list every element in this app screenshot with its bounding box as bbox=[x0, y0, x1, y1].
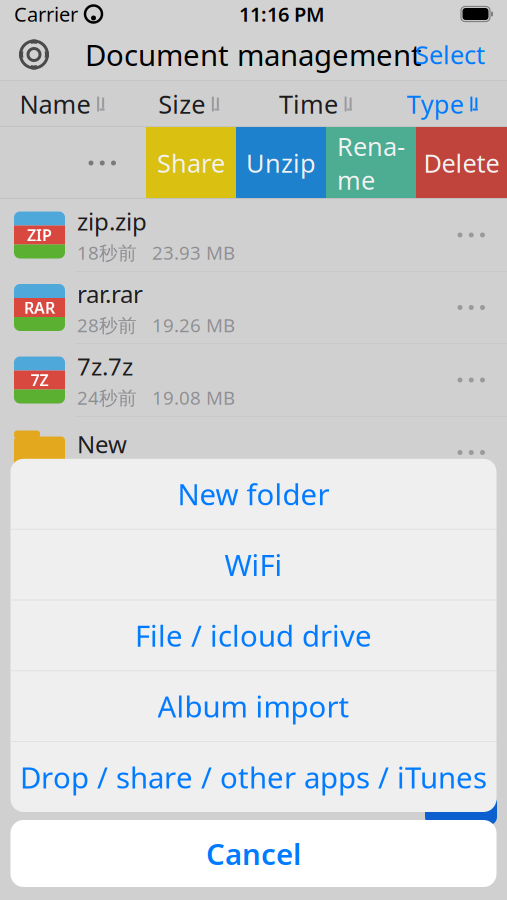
button[interactable]: Time bbox=[253, 81, 380, 127]
staticText: New bbox=[77, 428, 127, 460]
button[interactable]: Rename bbox=[326, 127, 416, 199]
staticText: New folder bbox=[177, 474, 329, 513]
button[interactable]: Type bbox=[380, 81, 507, 127]
staticText: Album import bbox=[157, 687, 349, 726]
staticText: Name bbox=[19, 87, 90, 121]
staticText: Cancel bbox=[206, 834, 301, 873]
staticText: Drop / share / other apps / iTunes bbox=[20, 757, 487, 796]
button[interactable]: Cancel bbox=[10, 820, 496, 887]
button[interactable]: RAR bbox=[0, 271, 507, 343]
button[interactable]: 7Z bbox=[0, 344, 507, 416]
staticText: Document management bbox=[85, 35, 422, 74]
button[interactable]: Delete bbox=[416, 127, 507, 199]
staticText: 7z.7z bbox=[77, 350, 133, 382]
staticText: ZIP bbox=[27, 224, 52, 246]
button[interactable]: Settings bbox=[8, 28, 60, 80]
staticText: 28秒前 19.26 MB bbox=[77, 312, 235, 337]
staticText: Delete bbox=[423, 146, 499, 180]
staticText: 11:16 PM bbox=[239, 1, 325, 27]
button[interactable]: File / icloud drive bbox=[10, 600, 496, 670]
staticText: 24秒前 19.08 MB bbox=[77, 385, 235, 410]
button[interactable]: Name bbox=[0, 81, 127, 127]
button[interactable]: WiFi bbox=[10, 530, 496, 600]
staticText: Time bbox=[279, 87, 338, 121]
staticText: WiFi bbox=[224, 545, 282, 584]
button[interactable]: New folder bbox=[10, 459, 496, 529]
button[interactable]: Size bbox=[127, 81, 254, 127]
staticText: zip.zip bbox=[77, 205, 147, 237]
staticText: File / icloud drive bbox=[135, 616, 372, 655]
staticText: Type bbox=[407, 87, 464, 121]
staticText: 7Z bbox=[30, 369, 48, 391]
button[interactable]: More options bbox=[0, 127, 146, 199]
button[interactable]: New bbox=[0, 416, 507, 488]
staticText: Size bbox=[158, 87, 205, 121]
staticText: Unzip bbox=[246, 146, 316, 180]
staticText: RAR bbox=[24, 297, 55, 318]
button[interactable]: ZIP bbox=[0, 199, 507, 271]
staticText: Select bbox=[415, 38, 485, 71]
button[interactable]: Album import bbox=[10, 671, 496, 741]
staticText: Share bbox=[157, 146, 225, 180]
button[interactable]: Share bbox=[146, 127, 236, 199]
staticText: 18秒前 23.93 MB bbox=[77, 240, 235, 265]
staticText: rar.rar bbox=[77, 278, 143, 310]
button[interactable]: Drop / share / other apps / iTunes bbox=[10, 742, 496, 812]
staticText: Carrier bbox=[14, 1, 78, 27]
button[interactable]: Select bbox=[401, 28, 499, 80]
staticText: Rename bbox=[337, 129, 405, 197]
button[interactable]: Unzip bbox=[236, 127, 326, 199]
